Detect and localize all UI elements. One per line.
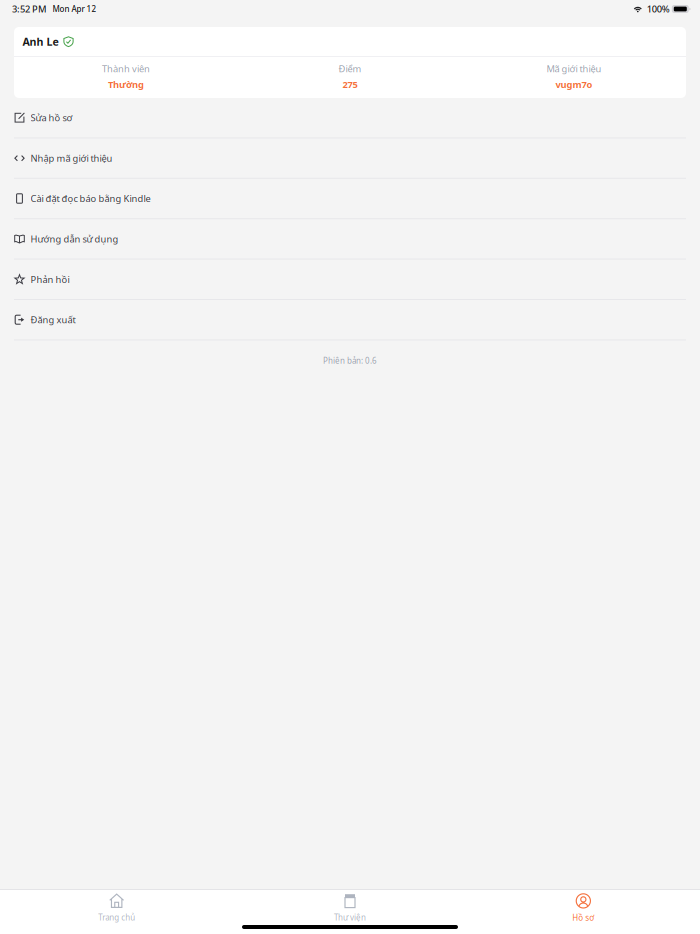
staticText: 275 [342, 78, 357, 91]
staticText: Mã giới thiệu [546, 62, 601, 75]
staticText: vugm7o [555, 78, 592, 91]
button[interactable]: Phản hồi [0, 260, 700, 300]
staticText: Điểm [338, 62, 361, 75]
staticText: Mon Apr 12 [52, 4, 96, 14]
staticText: Cài đặt đọc báo bằng Kindle [30, 192, 150, 205]
button[interactable]: Nhập mã giới thiệu [0, 138, 700, 179]
staticText: Anh Le [22, 34, 58, 49]
staticText: Phản hồi [30, 273, 69, 285]
button[interactable]: Hướng dẫn sử dụng [0, 219, 700, 260]
staticText: Hướng dẫn sử dụng [30, 233, 118, 245]
staticText: Nhập mã giới thiệu [30, 152, 112, 164]
button[interactable]: Đăng xuất [0, 300, 700, 340]
staticText: 100% [647, 3, 670, 15]
staticText: Hồ sơ [572, 912, 594, 923]
staticText: Phiên bản: 0.6 [323, 355, 377, 366]
staticText: Trang chủ [98, 912, 135, 923]
button[interactable]: Thư viện [233, 890, 467, 924]
staticText: 3:52 PM [12, 3, 47, 15]
button[interactable]: Trang chủ [0, 890, 233, 924]
button[interactable]: Sửa hồ sơ [0, 98, 700, 138]
staticText: Thư viện [334, 912, 366, 923]
staticText: Sửa hồ sơ [30, 111, 72, 124]
button[interactable]: Hồ sơ [467, 890, 700, 924]
button[interactable]: Cài đặt đọc báo bằng Kindle [0, 179, 700, 219]
staticText: Thường [108, 78, 144, 91]
staticText: Thành viên [102, 62, 150, 75]
staticText: Đăng xuất [30, 313, 75, 326]
